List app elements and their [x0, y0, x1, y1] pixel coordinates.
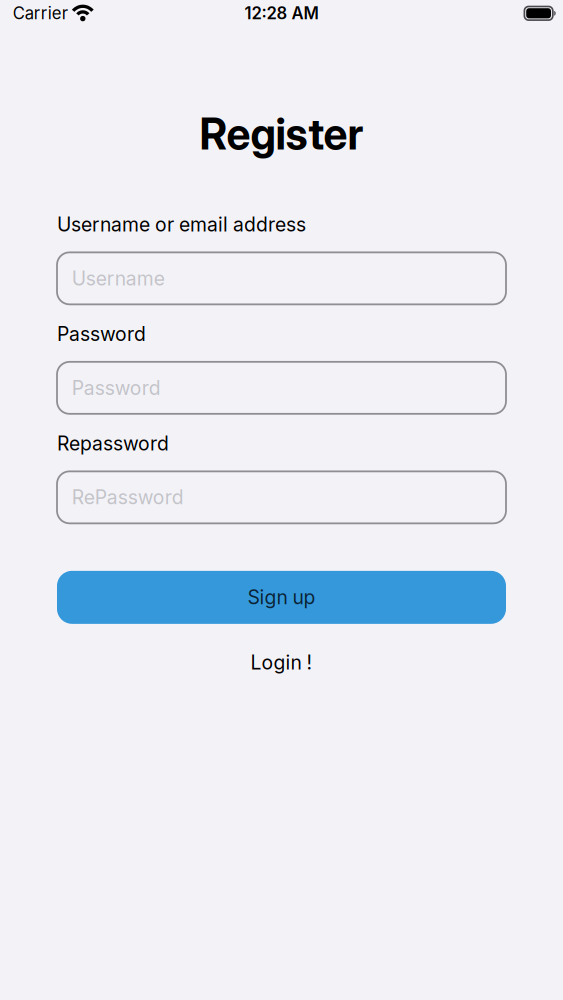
staticText: Repassword — [57, 432, 169, 455]
staticText: 12:28 AM — [244, 3, 318, 23]
button[interactable]: Sign up — [57, 571, 506, 624]
button[interactable]: Login ! — [250, 651, 312, 674]
staticText: Password — [72, 376, 161, 400]
button[interactable]: Password — [57, 362, 506, 414]
button[interactable]: RePassword — [57, 471, 506, 523]
staticText: Carrier — [13, 3, 68, 23]
staticText: Password — [57, 322, 146, 346]
button[interactable]: Username — [57, 252, 506, 304]
staticText: Login ! — [250, 651, 312, 674]
staticText: Username or email address — [57, 213, 306, 236]
staticText: Username — [72, 267, 165, 290]
staticText: Sign up — [247, 586, 315, 609]
staticText: Register — [199, 108, 363, 160]
staticText: RePassword — [72, 486, 184, 509]
